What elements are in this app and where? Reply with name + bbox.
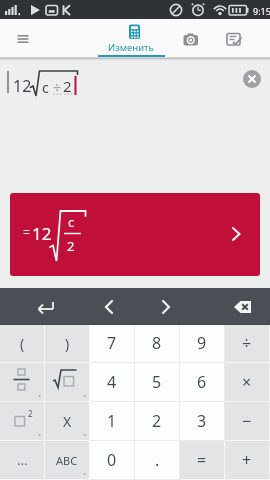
button[interactable]: 3 (180, 402, 225, 441)
button[interactable]: 9 (180, 324, 225, 363)
button[interactable] (226, 292, 260, 320)
staticText: X (63, 412, 72, 431)
button[interactable] (176, 25, 206, 53)
staticText: 1 (107, 410, 117, 432)
button[interactable]: 2 (0, 402, 45, 441)
staticText: × (242, 371, 252, 393)
button[interactable]: 2 (135, 402, 180, 441)
button[interactable] (0, 363, 45, 402)
button[interactable]: . (135, 441, 180, 480)
staticText: 5 (152, 371, 162, 393)
staticText: 4 (107, 371, 117, 393)
staticText: 6 (197, 371, 207, 393)
button[interactable]: X (45, 402, 90, 441)
staticText: c (68, 213, 75, 231)
button[interactable] (243, 70, 261, 88)
button[interactable]: 7 (90, 324, 135, 363)
staticText: 0 (107, 449, 117, 471)
staticText: ABC (56, 453, 78, 468)
staticText: = (23, 224, 30, 240)
staticText: 12 (32, 222, 52, 245)
staticText: 7 (107, 332, 117, 354)
staticText: 2 (63, 76, 72, 96)
button[interactable] (220, 25, 250, 53)
staticText: 2 (67, 237, 75, 255)
staticText: 3 (197, 410, 207, 432)
button[interactable]: 8 (135, 324, 180, 363)
button[interactable]: Изменить (98, 19, 170, 59)
button[interactable]: ) (45, 324, 90, 363)
staticText: ÷ (53, 78, 62, 97)
button[interactable] (28, 292, 64, 320)
staticText: ) (65, 334, 70, 353)
staticText: ÷ (242, 332, 252, 354)
button[interactable] (10, 24, 46, 54)
button[interactable]: − (225, 402, 270, 441)
staticText: − (242, 410, 252, 432)
button[interactable]: ( (0, 324, 45, 363)
staticText: 9 (197, 332, 207, 354)
staticText: + (242, 449, 252, 471)
staticText: = (197, 449, 207, 471)
staticText: . (155, 449, 160, 471)
button[interactable] (94, 288, 124, 316)
button[interactable]: 5 (135, 363, 180, 402)
button[interactable]: 4 (90, 363, 135, 402)
button[interactable]: = (10, 193, 260, 276)
button[interactable]: 0 (90, 441, 135, 480)
button[interactable] (150, 288, 180, 316)
button[interactable]: 6 (180, 363, 225, 402)
staticText: 9:15 (253, 5, 270, 17)
button[interactable]: + (225, 441, 270, 480)
staticText: ( (20, 334, 25, 353)
staticText: c (42, 78, 49, 97)
staticText: 12 (13, 75, 32, 97)
button[interactable]: ... (0, 441, 45, 480)
staticText: Изменить (108, 41, 154, 54)
button[interactable]: = (180, 441, 225, 480)
button[interactable]: ÷ (225, 324, 270, 363)
staticText: 8 (152, 332, 162, 354)
staticText: 2 (152, 410, 162, 432)
button[interactable]: ABC (45, 441, 90, 480)
staticText: 2 (28, 408, 33, 419)
staticText: ... (17, 451, 28, 469)
button[interactable]: × (225, 363, 270, 402)
button[interactable] (45, 363, 90, 402)
button[interactable]: 1 (90, 402, 135, 441)
